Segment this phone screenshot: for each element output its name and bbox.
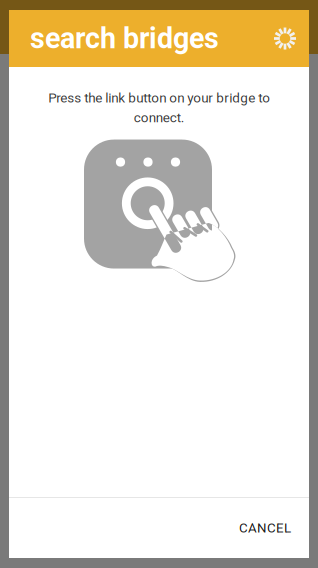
staticText: CANCEL — [239, 520, 291, 536]
staticText: Press the link button on your bridge to … — [48, 90, 270, 126]
button[interactable]: CANCEL — [221, 506, 309, 550]
staticText: search bridges — [30, 22, 219, 55]
